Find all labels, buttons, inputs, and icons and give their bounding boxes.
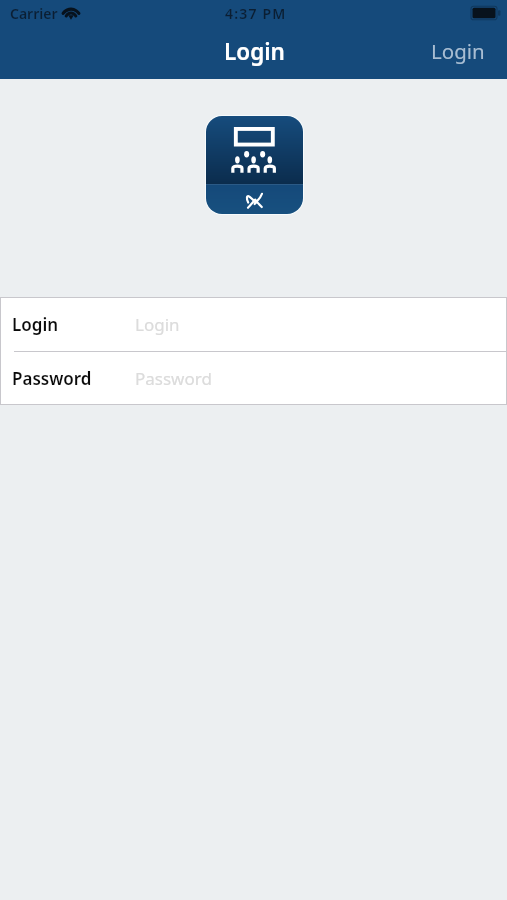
staticText: Password [135, 367, 212, 390]
staticText: Login [135, 313, 180, 336]
staticText: Login [431, 37, 485, 65]
staticText: Carrier [10, 4, 58, 23]
staticText: Password [12, 367, 92, 390]
button[interactable]: App logo [206, 116, 303, 214]
staticText: Login [12, 313, 59, 336]
staticText: 4:37 PM [225, 4, 287, 23]
staticText: Login [224, 36, 285, 67]
button[interactable]: Login [1, 298, 506, 351]
button[interactable]: Login [415, 32, 507, 76]
button[interactable]: Password [1, 352, 506, 404]
